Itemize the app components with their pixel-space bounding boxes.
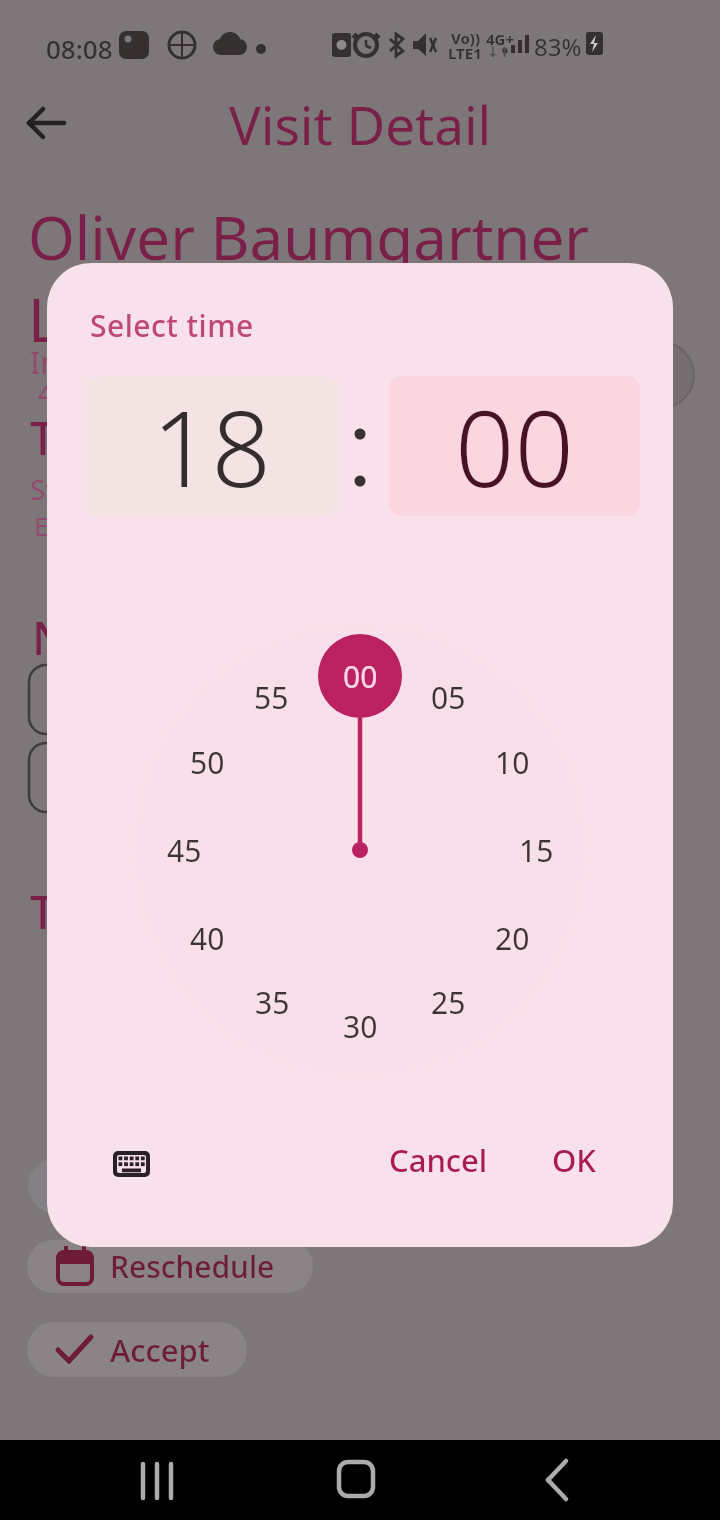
- staticText: Visit Detail: [229, 88, 492, 160]
- staticText: Tasks: [30, 880, 149, 943]
- staticText: 00: [455, 376, 574, 516]
- staticText: End: 19:00: [34, 508, 161, 543]
- button[interactable]: 00: [389, 376, 640, 516]
- staticText: Cancel: [389, 1139, 488, 1181]
- staticText: Vo)): [451, 28, 480, 48]
- button[interactable]: [120, 1444, 192, 1516]
- button[interactable]: Cancel: [377, 1128, 499, 1192]
- button[interactable]: Accept: [27, 1322, 247, 1377]
- staticText: 30: [343, 1006, 378, 1047]
- staticText: Accept: [110, 1329, 210, 1371]
- staticText: ↓↑: [487, 44, 511, 60]
- button[interactable]: Reschedule: [27, 1240, 313, 1293]
- staticText: 15: [519, 830, 554, 871]
- button[interactable]: [24, 99, 72, 147]
- staticText: 25: [431, 982, 466, 1023]
- staticText: 45: [167, 830, 202, 871]
- staticText: 50: [190, 742, 225, 783]
- staticText: Interview and assessment: [30, 342, 397, 383]
- staticText: 18: [152, 376, 271, 516]
- staticText: 55: [254, 677, 289, 718]
- staticText: 83%: [534, 30, 582, 63]
- staticText: LTE1: [448, 43, 482, 63]
- button[interactable]: OK: [534, 1128, 614, 1192]
- staticText: Time: [30, 406, 139, 469]
- staticText: 08:08: [46, 31, 113, 66]
- staticText: Location Visit: [28, 278, 402, 360]
- staticText: 20: [495, 918, 530, 959]
- button[interactable]: 18: [86, 376, 337, 516]
- staticText: 35: [255, 982, 290, 1023]
- staticText: 4:30 PM - 5:30 PM: [38, 372, 289, 413]
- staticText: 40: [190, 918, 225, 959]
- staticText: 00: [343, 656, 378, 697]
- staticText: 4G+: [486, 29, 515, 49]
- staticText: Reschedule: [110, 1246, 275, 1287]
- staticText: Start: 18:00: [30, 470, 180, 508]
- button[interactable]: [106, 1137, 158, 1185]
- staticText: Select time: [90, 305, 254, 346]
- button[interactable]: [320, 1444, 392, 1516]
- staticText: 05: [431, 677, 466, 718]
- staticText: Notes: [32, 606, 163, 669]
- staticText: 10: [495, 742, 530, 783]
- staticText: Oliver Baumgartner: [28, 196, 590, 278]
- staticText: OK: [552, 1139, 596, 1181]
- button[interactable]: [522, 1444, 594, 1516]
